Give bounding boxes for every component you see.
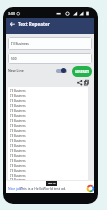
staticText: 500: [11, 57, 17, 61]
staticText: Nice job!: [8, 186, 23, 191]
staticText: I'll Business: [11, 42, 29, 46]
staticText: I'll Business: [10, 129, 26, 133]
button[interactable]: [87, 185, 94, 192]
button[interactable]: 500: [8, 53, 92, 64]
staticText: I'll Business: [10, 144, 26, 148]
staticText: I'll Business: [10, 169, 26, 173]
button[interactable]: [6, 181, 94, 193]
button[interactable]: [77, 80, 83, 86]
staticText: New Line: [8, 68, 24, 73]
staticText: I'll Business: [10, 164, 26, 168]
staticText: Test Ad: [48, 182, 56, 185]
staticText: I'll Business: [10, 178, 26, 180]
staticText: I'll Business: [10, 149, 26, 153]
staticText: I'll Business: [10, 139, 26, 143]
staticText: I'll Business: [10, 99, 26, 103]
button[interactable]: I'll Business: [8, 87, 88, 180]
staticText: Text Repeater: [18, 21, 50, 27]
staticText: I'll Business: [10, 109, 26, 113]
button[interactable]: [10, 22, 15, 27]
staticText: This is a HelloWorld test ad.: [20, 186, 67, 191]
button[interactable]: GENERATE: [72, 66, 92, 77]
staticText: 3:00: [8, 11, 16, 16]
button[interactable]: I'll Business: [8, 37, 92, 50]
button[interactable]: [56, 69, 67, 73]
staticText: GENERATE: [75, 70, 90, 74]
staticText: I'll Business: [10, 104, 26, 108]
staticText: I'll Business: [10, 114, 26, 118]
staticText: I'll Business: [10, 159, 26, 163]
button[interactable]: [84, 80, 89, 86]
staticText: I'll Business: [10, 124, 26, 128]
staticText: I'll Business: [10, 89, 26, 93]
staticText: I'll Business: [10, 134, 26, 138]
staticText: I'll Business: [10, 119, 26, 123]
staticText: I'll Business: [10, 94, 26, 98]
staticText: I'll Business: [10, 154, 26, 158]
staticText: I'll Business: [10, 174, 26, 178]
